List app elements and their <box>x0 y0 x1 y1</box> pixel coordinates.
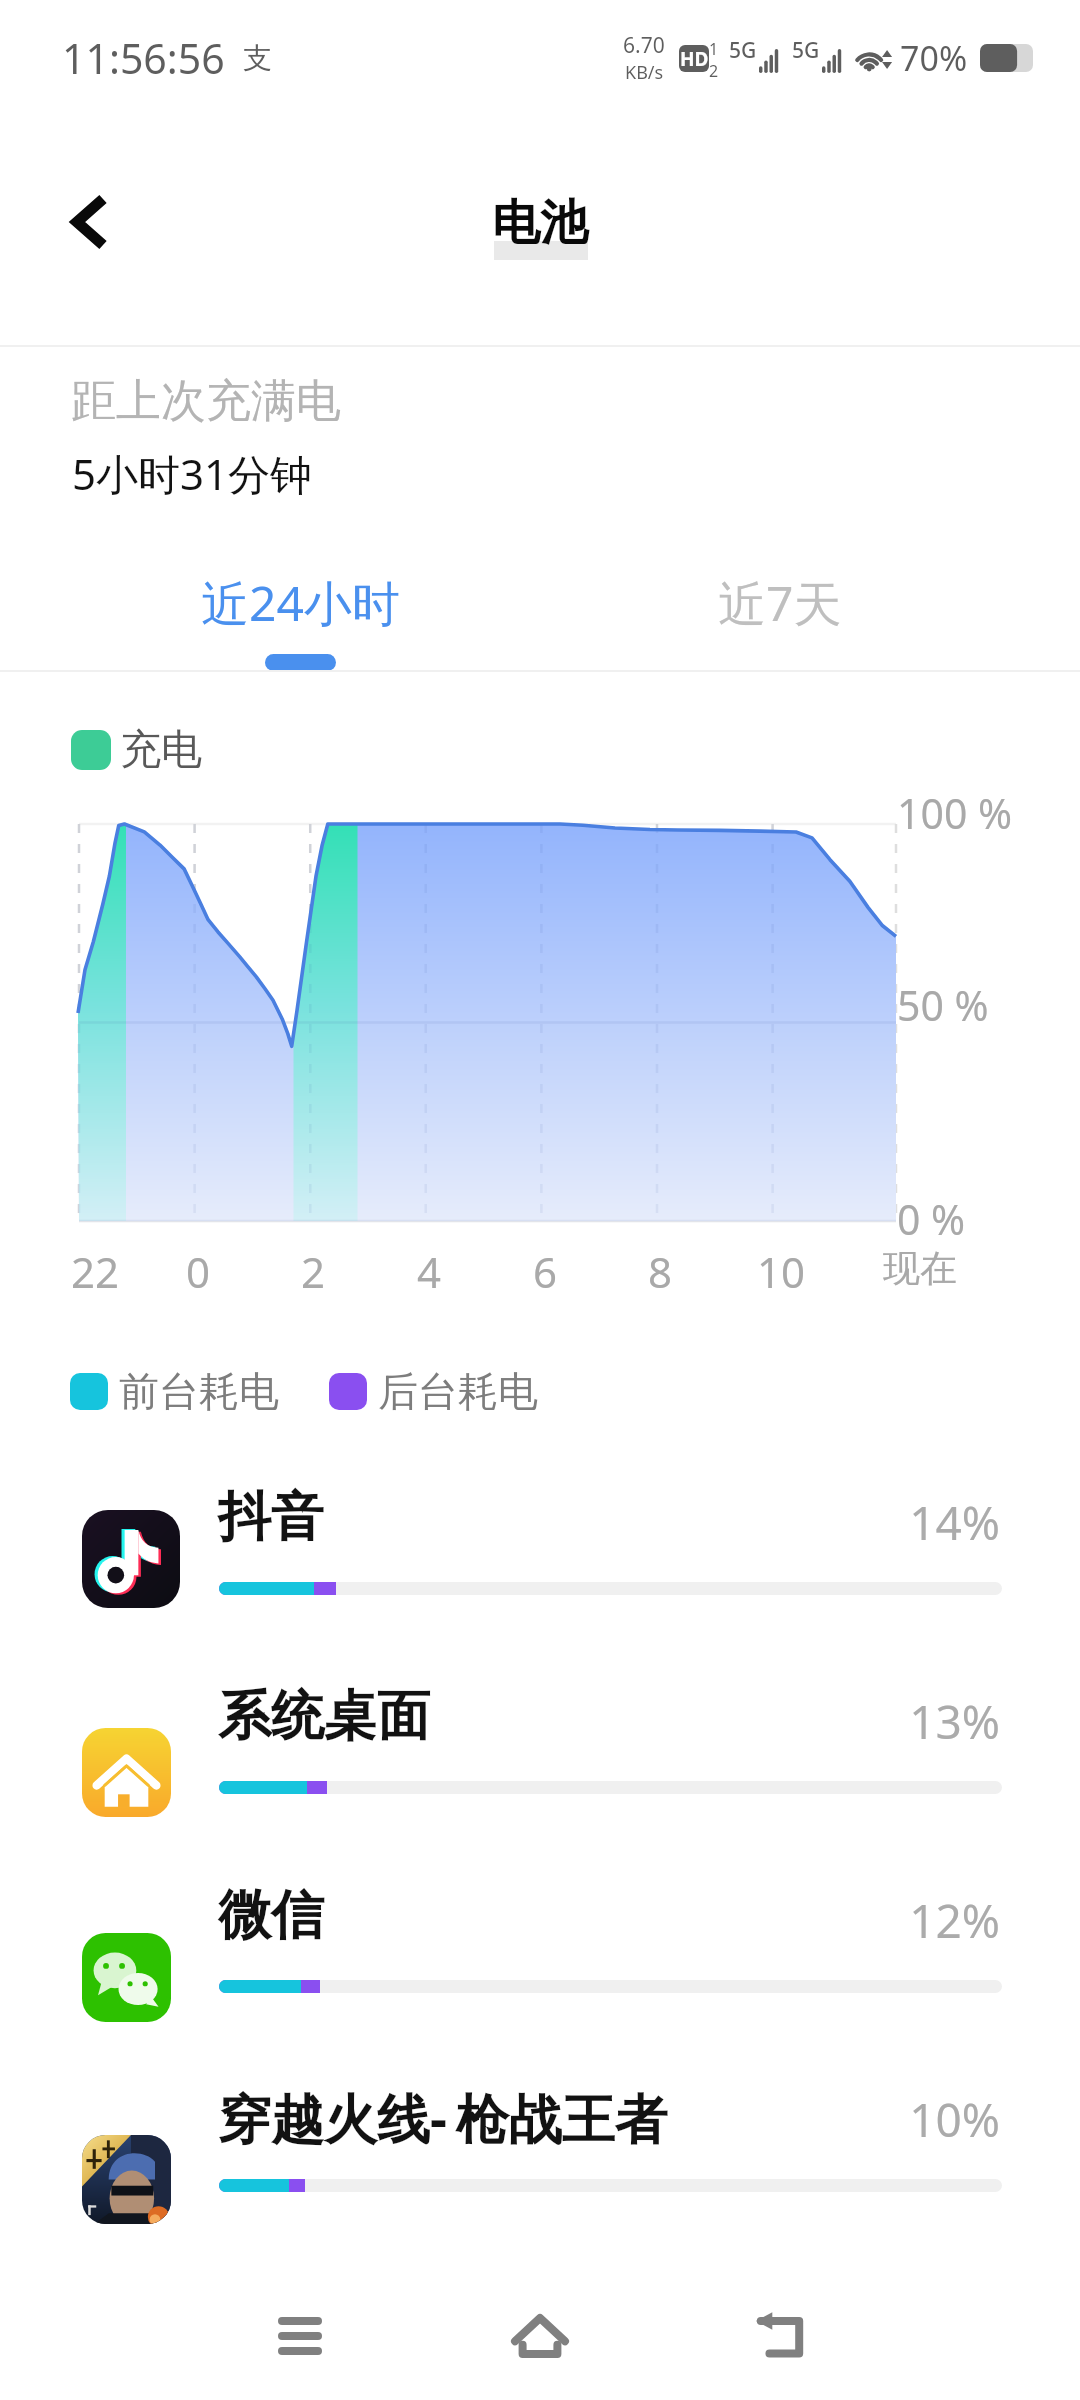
staticText: 10% <box>760 2088 1000 2151</box>
staticText: 5小时31分钟 <box>72 445 313 502</box>
staticText: 5G <box>729 36 757 65</box>
button[interactable]: Recent apps <box>254 2290 346 2382</box>
staticText: 电池 <box>0 193 1080 253</box>
staticText: 1 <box>709 38 719 60</box>
staticText: 前台耗电 <box>119 1366 279 1416</box>
button[interactable]: Home <box>494 2290 586 2382</box>
staticText: 4 <box>417 1243 442 1293</box>
staticText: 12% <box>760 1889 1000 1952</box>
staticText: 100 % <box>897 785 1013 841</box>
staticText: 系统桌面 <box>218 1683 430 1750</box>
staticText: 近7天 <box>718 570 842 636</box>
staticText: 5G <box>792 36 820 65</box>
staticText: 近24小时 <box>201 570 400 636</box>
staticText: 2 <box>301 1243 326 1293</box>
staticText: 现在 <box>883 1245 957 1292</box>
button[interactable]: 近24小时 <box>60 545 540 671</box>
button[interactable]: Back <box>734 2290 826 2382</box>
button[interactable]: Back <box>44 176 136 268</box>
staticText: 6 <box>533 1243 558 1293</box>
staticText: KB/s <box>625 60 664 85</box>
button[interactable]: 近7天 <box>540 545 1020 671</box>
staticText: 10 <box>757 1243 806 1293</box>
button[interactable]: 微信 <box>0 1858 1080 2057</box>
button[interactable]: 抖音 <box>0 1460 1080 1659</box>
staticText: 穿越火线‐ 枪战王者 <box>218 2081 668 2153</box>
staticText: 8 <box>648 1243 673 1293</box>
staticText: 微信 <box>218 1882 324 1949</box>
staticText: 70% <box>900 35 968 81</box>
staticText: 11:56:56 <box>62 30 225 86</box>
button[interactable]: 穿越火线‐ 枪战王者 <box>0 2057 1080 2256</box>
button[interactable]: 系统桌面 <box>0 1659 1080 1858</box>
staticText: HD <box>680 46 709 72</box>
staticText: 抖音 <box>218 1484 324 1551</box>
staticText: 后台耗电 <box>378 1366 538 1416</box>
staticText: 13% <box>760 1690 1000 1753</box>
staticText: 0 <box>186 1243 211 1293</box>
staticText: 距上次充满电 <box>71 373 341 430</box>
staticText: 22 <box>71 1243 120 1293</box>
staticText: 充电 <box>120 724 202 776</box>
staticText: 6.70 <box>623 31 665 60</box>
staticText: 2 <box>709 60 719 78</box>
staticText: 支 <box>243 40 272 77</box>
staticText: 14% <box>760 1491 1000 1554</box>
staticText: 0 % <box>897 1191 966 1247</box>
staticText: 50 % <box>897 977 989 1033</box>
